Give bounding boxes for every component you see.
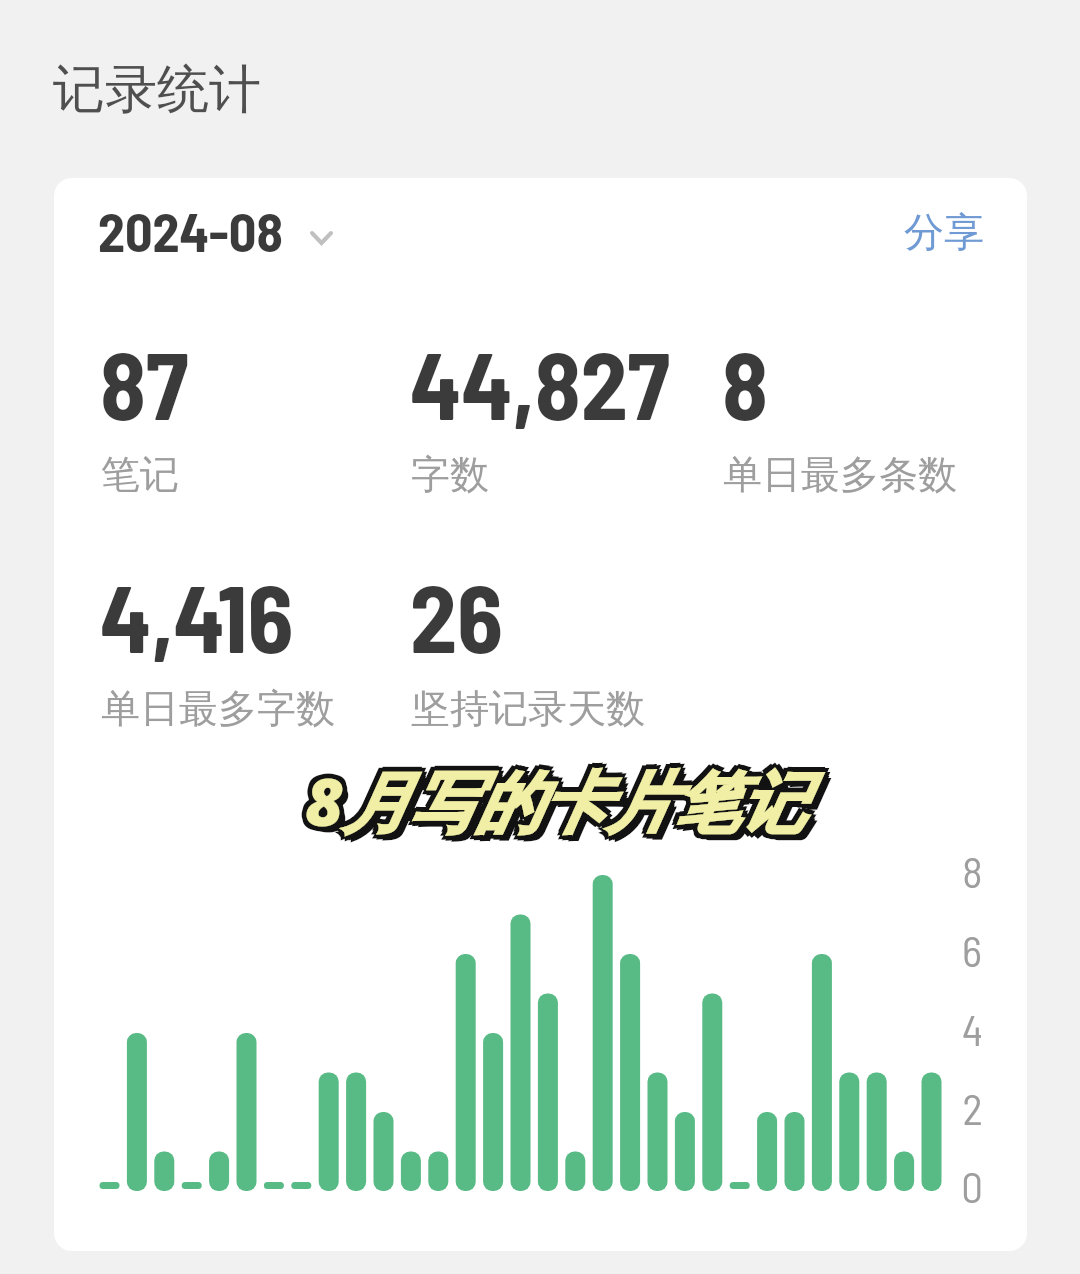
staticText: 8月写的卡片笔记 [301,759,802,849]
staticText: 单日最多条数 [723,450,957,499]
staticText: 单日最多字数 [101,684,335,733]
staticText: 4 [962,1003,983,1055]
button[interactable]: 2024-08 [98,194,348,268]
staticText: 8月写的卡片笔记 [300,755,801,845]
staticText: 4,416 [100,559,294,672]
staticText: 记录统计 [53,57,261,123]
staticText: 8月写的卡片笔记 [309,759,810,849]
staticText: 8 [722,326,769,439]
staticText: 6 [962,924,982,976]
staticText: 0 [961,1160,983,1212]
staticText: 笔记 [101,450,179,499]
staticText: 8月写的卡片笔记 [305,760,806,850]
staticText: 44,827 [410,326,671,439]
staticText: 8月写的卡片笔记 [305,750,806,840]
staticText: 8月写的卡片笔记 [301,751,802,841]
staticText: 2 [962,1082,983,1134]
staticText: 8月写的卡片笔记 [309,751,810,841]
staticText: 分享 [904,207,984,257]
staticText: 8月写的卡片笔记 [310,755,811,845]
staticText: 8月写的卡片笔记 [311,761,812,851]
staticText: 2024-08 [98,198,283,263]
staticText: 字数 [411,450,489,499]
staticText: 26 [410,559,503,672]
button[interactable]: 分享 [902,198,1002,258]
staticText: 坚持记录天数 [411,684,645,733]
staticText: 8月写的卡片笔记 [305,755,806,845]
staticText: 8 [962,845,983,897]
staticText: 87 [100,326,189,439]
